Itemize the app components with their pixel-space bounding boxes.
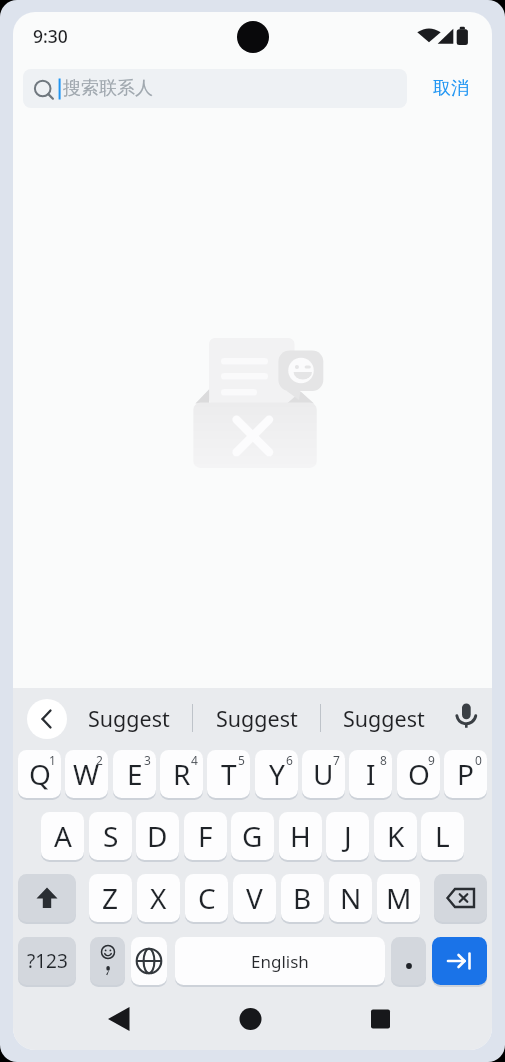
button[interactable]: P <box>444 750 487 798</box>
staticText: 8 <box>380 752 387 768</box>
staticText: Suggest <box>216 704 298 733</box>
staticText: 3 <box>144 752 151 768</box>
staticText: 7 <box>333 752 340 768</box>
button[interactable]: T <box>207 750 250 798</box>
staticText: C <box>198 879 216 917</box>
staticText: L <box>435 817 450 855</box>
staticText: 6 <box>286 752 293 768</box>
button[interactable]: U <box>302 750 345 798</box>
staticText: 5 <box>238 752 245 768</box>
button[interactable] <box>18 874 76 922</box>
button[interactable]: Q <box>18 750 61 798</box>
button[interactable] <box>432 937 487 985</box>
staticText: W <box>73 755 100 793</box>
button[interactable]: V <box>233 874 276 922</box>
staticText: B <box>293 879 312 917</box>
button[interactable]: D <box>136 812 179 860</box>
staticText: ?123 <box>27 948 68 974</box>
staticText: N <box>340 879 362 917</box>
staticText: 搜索联系人 <box>63 77 153 100</box>
staticText: 2 <box>96 752 103 768</box>
button[interactable]: 取消 <box>421 69 481 108</box>
staticText: E <box>127 755 143 793</box>
button[interactable] <box>220 999 280 1039</box>
button[interactable]: Suggest <box>71 698 187 738</box>
staticText: 4 <box>191 752 198 768</box>
staticText: U <box>313 755 334 793</box>
button[interactable]: N <box>329 874 372 922</box>
button[interactable]: 搜索联系人 <box>23 69 407 108</box>
staticText: H <box>290 817 311 855</box>
button[interactable]: Suggest <box>326 698 442 738</box>
staticText: S <box>103 817 119 855</box>
button[interactable]: O <box>397 750 440 798</box>
staticText: 1 <box>49 752 56 768</box>
staticText: 0 <box>475 752 482 768</box>
button[interactable]: ?123 <box>18 937 76 985</box>
button[interactable] <box>391 937 426 985</box>
button[interactable]: H <box>279 812 322 860</box>
button[interactable] <box>89 999 149 1039</box>
staticText: A <box>54 817 72 855</box>
staticText: F <box>198 817 213 855</box>
staticText: T <box>221 755 237 793</box>
button[interactable]: W <box>65 750 108 798</box>
button[interactable]: R <box>160 750 203 798</box>
staticText: K <box>387 817 405 855</box>
button[interactable] <box>131 937 167 985</box>
staticText: X <box>150 879 167 917</box>
staticText: Q <box>29 755 51 793</box>
staticText: 9:30 <box>33 24 68 48</box>
staticText: 取消 <box>433 77 469 100</box>
button[interactable]: E <box>113 750 156 798</box>
button[interactable]: K <box>374 812 417 860</box>
button[interactable]: I <box>349 750 392 798</box>
staticText: Suggest <box>343 704 425 733</box>
button[interactable]: Suggest <box>199 698 315 738</box>
staticText: R <box>173 755 191 793</box>
staticText: 9 <box>428 752 435 768</box>
button[interactable] <box>90 937 125 985</box>
staticText: O <box>408 755 430 793</box>
staticText: J <box>344 817 352 855</box>
staticText: V <box>246 879 263 917</box>
staticText: D <box>147 817 168 855</box>
button[interactable]: S <box>89 812 132 860</box>
button[interactable]: G <box>231 812 274 860</box>
button[interactable]: A <box>41 812 84 860</box>
button[interactable] <box>446 699 486 739</box>
button[interactable] <box>434 874 487 922</box>
button[interactable]: English <box>175 937 385 985</box>
staticText: Z <box>102 879 119 917</box>
button[interactable]: X <box>137 874 180 922</box>
button[interactable]: B <box>281 874 324 922</box>
staticText: English <box>251 950 309 973</box>
staticText: P <box>457 755 474 793</box>
button[interactable] <box>27 699 67 739</box>
staticText: Y <box>269 755 285 793</box>
button[interactable]: F <box>184 812 227 860</box>
button[interactable]: L <box>421 812 464 860</box>
staticText: G <box>242 817 263 855</box>
button[interactable]: Y <box>255 750 298 798</box>
button[interactable] <box>350 999 410 1039</box>
button[interactable]: M <box>377 874 420 922</box>
button[interactable]: J <box>326 812 369 860</box>
staticText: M <box>386 879 412 917</box>
staticText: Suggest <box>88 704 170 733</box>
button[interactable]: Z <box>89 874 132 922</box>
staticText: I <box>366 755 376 793</box>
button[interactable]: C <box>185 874 228 922</box>
